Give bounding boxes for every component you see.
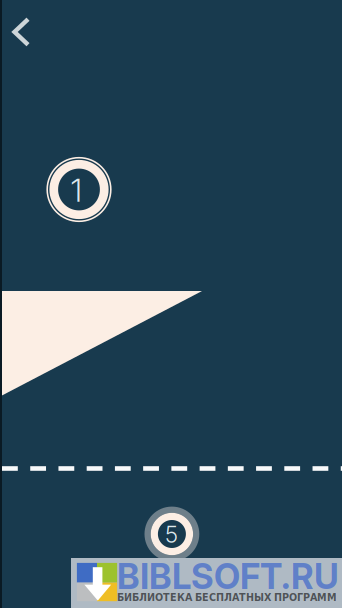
staticText: 5 xyxy=(165,521,178,548)
staticText: 1 xyxy=(70,171,82,209)
staticText: БИБЛИОТЕКА БЕСПЛАТНЫХ ПРОГРАММ xyxy=(117,591,337,603)
staticText: BIBLSOFT.RU xyxy=(117,555,339,597)
button[interactable]: Back xyxy=(3,8,39,56)
